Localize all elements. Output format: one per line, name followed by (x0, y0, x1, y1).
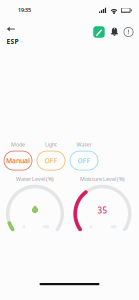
staticText: Manual (6, 156, 30, 165)
staticText: 100 (110, 224, 116, 229)
button[interactable]: Info (122, 25, 135, 39)
staticText: Light (45, 141, 57, 148)
staticText: Mode (11, 141, 25, 148)
staticText: Water (76, 141, 91, 148)
button[interactable]: OFF (37, 151, 65, 170)
staticText: OFF (44, 156, 57, 165)
staticText: Moisture Level (%) (80, 175, 125, 183)
staticText: 0 (22, 224, 24, 229)
button[interactable]: Back (1, 20, 21, 38)
staticText: 19:35 (18, 6, 31, 14)
staticText: 100 (42, 224, 48, 229)
button[interactable]: Manual (4, 151, 32, 170)
staticText: 0 (90, 224, 92, 229)
staticText: ESP (6, 37, 18, 46)
staticText: Water Level (%) (16, 175, 54, 183)
button[interactable]: Notifications (108, 25, 121, 39)
staticText: 35 (97, 205, 107, 216)
button[interactable]: Configure (91, 24, 107, 40)
staticText: OFF (77, 156, 90, 165)
button[interactable]: OFF (70, 151, 98, 170)
